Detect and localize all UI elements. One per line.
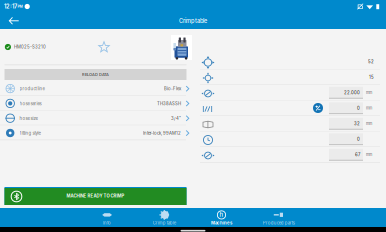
staticText: Crimp table	[179, 18, 207, 24]
staticText: 15	[369, 74, 374, 80]
staticText: Produced parts	[263, 220, 295, 226]
staticText: Info	[103, 220, 111, 226]
staticText: h	[219, 211, 223, 218]
button[interactable]: product line	[0, 81, 193, 96]
staticText: 0	[357, 136, 360, 142]
staticText: fitting style	[19, 131, 40, 136]
staticText: mm	[366, 90, 372, 95]
button[interactable]: hose size	[0, 111, 193, 125]
staticText: product line	[19, 86, 44, 91]
staticText: TH38ASSH	[157, 101, 181, 106]
staticText: 12:17	[4, 3, 17, 10]
staticText: MACHINE READY TO CRIMP	[66, 193, 124, 199]
staticText: Bio-Flex	[164, 86, 181, 91]
staticText: RELOAD DATA	[82, 72, 109, 77]
staticText: mm	[366, 106, 372, 110]
staticText: 22.000	[344, 90, 360, 95]
staticText: PM	[18, 4, 23, 9]
button[interactable]: fitting style	[0, 125, 193, 140]
button[interactable]: h	[193, 208, 250, 227]
button[interactable]: Back	[5, 13, 23, 29]
staticText: hose series	[19, 101, 41, 106]
button[interactable]: Crimp table	[136, 208, 193, 227]
staticText: 3/4"	[171, 116, 181, 121]
button[interactable]: MACHINE READY TO CRIMP	[4, 187, 186, 205]
staticText: mm	[366, 152, 372, 157]
staticText: Machines	[211, 220, 232, 226]
staticText: HM025-S3210	[14, 44, 46, 49]
staticText: Crimp table	[153, 220, 176, 226]
button[interactable]: RELOAD DATA	[4, 69, 186, 80]
staticText: 67	[355, 152, 360, 157]
button[interactable]: Produced parts	[250, 208, 307, 227]
button[interactable]: Favorite	[96, 39, 112, 55]
staticText: 32	[354, 121, 360, 126]
staticText: Inter-lock, 99AM12	[143, 131, 181, 136]
staticText: 0	[357, 105, 360, 111]
staticText: 52	[368, 59, 374, 64]
button[interactable]: hose series	[0, 96, 193, 111]
staticText: hose size	[19, 116, 37, 121]
staticText: mm	[366, 121, 372, 126]
button[interactable]: Info	[78, 208, 136, 227]
